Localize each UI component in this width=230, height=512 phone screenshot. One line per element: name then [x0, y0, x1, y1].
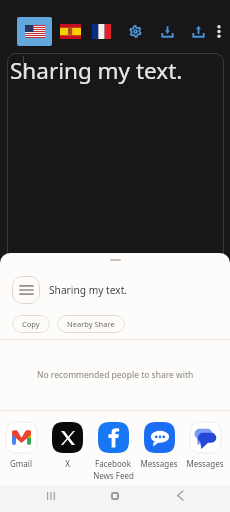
button[interactable]: Upload — [183, 16, 213, 46]
button[interactable]: Gmail — [0, 422, 44, 469]
staticText: No recommended people to share with — [37, 369, 194, 381]
button[interactable]: French — [85, 17, 117, 46]
button[interactable]: Back — [154, 482, 205, 509]
button[interactable]: English — [17, 17, 52, 46]
staticText: Facebook — [95, 458, 131, 469]
staticText: Messages — [186, 458, 224, 469]
button[interactable]: Nearby Share — [57, 315, 125, 333]
staticText: News Feed — [93, 470, 134, 481]
button[interactable]: Messages — [136, 422, 182, 469]
button[interactable]: Messages — [182, 422, 228, 469]
staticText: Messages — [140, 458, 178, 469]
staticText: Gmail — [10, 458, 32, 469]
staticText: X — [65, 458, 70, 469]
button[interactable]: Facebook — [90, 422, 136, 481]
button[interactable]: Recents — [26, 482, 76, 509]
staticText: Copy — [22, 319, 40, 329]
button[interactable]: More options — [209, 16, 229, 46]
staticText: Sharing my text. — [10, 55, 183, 86]
button[interactable]: Settings — [120, 16, 150, 46]
staticText: Nearby Share — [67, 319, 115, 329]
button[interactable]: X — [44, 422, 90, 469]
button[interactable]: Spanish — [54, 17, 86, 46]
button[interactable]: Home — [90, 482, 140, 509]
button[interactable]: Download — [152, 16, 182, 46]
button[interactable]: Copy — [12, 315, 50, 333]
staticText: Sharing my text. — [49, 283, 128, 297]
